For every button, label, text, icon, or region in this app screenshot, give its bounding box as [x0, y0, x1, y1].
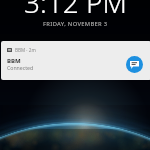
staticText: BBM · 2m [15, 47, 36, 53]
other: BBM [126, 56, 143, 73]
staticText: Connected [7, 64, 34, 71]
staticText: BBM [7, 57, 21, 65]
staticText: FRIDAY, NOVEMBER 3 [43, 20, 108, 28]
staticText: 3:12 PM [24, 0, 127, 21]
button[interactable]: BBM · 2m [1, 41, 150, 80]
